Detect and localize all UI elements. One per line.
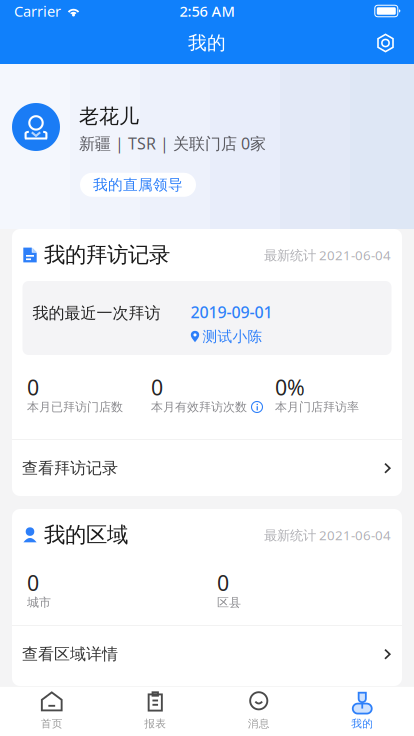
staticText: 我的直属领导 (93, 176, 183, 194)
button[interactable]: Settings (376, 22, 414, 63)
staticText: 0% (275, 373, 305, 401)
button[interactable]: 我的 (310, 686, 414, 736)
staticText: 查看拜访记录 (22, 458, 118, 478)
staticText: 最新统计 2021-06-04 (264, 246, 391, 264)
staticText: 报表 (144, 717, 166, 730)
staticText: 最新统计 2021-06-04 (264, 526, 391, 544)
staticText: 0 (27, 373, 39, 401)
button[interactable]: 报表 (103, 686, 207, 736)
staticText: Carrier (14, 1, 61, 21)
staticText: 测试小陈 (202, 328, 262, 346)
staticText: 我的区域 (44, 522, 128, 548)
staticText: 新疆 | TSR | 关联门店 0家 (79, 133, 266, 154)
staticText: 我的 (188, 31, 226, 54)
staticText: 我的 (351, 717, 373, 730)
staticText: 0 (27, 568, 39, 597)
button[interactable]: 查看区域详情 (12, 626, 402, 683)
staticText: 本月门店拜访率 (275, 400, 359, 414)
staticText: 城市 (27, 595, 51, 610)
staticText: 本月有效拜访次数 (151, 400, 247, 414)
staticText: 查看区域详情 (22, 644, 118, 664)
staticText: 消息 (248, 717, 270, 730)
button[interactable]: 查看拜访记录 (12, 440, 402, 497)
staticText: 2019-09-01 (190, 301, 272, 323)
staticText: 0 (217, 568, 229, 597)
staticText: 我的拜访记录 (44, 242, 170, 268)
button[interactable]: 消息 (207, 686, 310, 736)
button[interactable]: 我的直属领导 (80, 173, 196, 197)
staticText: 本月已拜访门店数 (27, 400, 123, 414)
staticText: 0 (151, 373, 163, 401)
staticText: 2:56 AM (179, 1, 234, 21)
staticText: 我的最近一次拜访 (32, 303, 160, 323)
staticText: 区县 (217, 595, 241, 610)
button[interactable]: 首页 (0, 686, 103, 736)
staticText: 老花儿 (79, 104, 139, 129)
staticText: 首页 (41, 717, 63, 730)
